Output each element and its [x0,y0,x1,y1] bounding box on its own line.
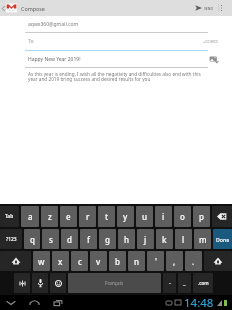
staticText: Happy New Year 2019! [28,56,81,63]
button[interactable]: - [163,273,176,293]
staticText: u [142,211,148,222]
staticText: Français [105,280,124,286]
staticText: .com [198,280,209,286]
button[interactable]: Happy New Year 2019! [0,51,232,67]
button[interactable]: r [79,206,96,227]
staticText: ?123 [6,236,17,243]
button[interactable]: z [41,206,58,227]
staticText: s [49,234,53,245]
button[interactable]: s [42,229,59,249]
button[interactable]: k [156,229,173,249]
button[interactable]: Voice input [32,273,48,293]
button[interactable]: More options [211,0,232,16]
staticText: g [105,234,110,245]
button[interactable]: Done [213,229,232,249]
button[interactable]: ' [147,251,164,271]
button[interactable]: .com [193,273,213,293]
button[interactable]: Recent apps [46,295,70,310]
staticText: k [162,234,167,245]
button[interactable]: h [118,229,135,249]
staticText: p [199,211,204,222]
button[interactable]: a [21,206,39,227]
staticText: a [28,211,33,222]
button[interactable]: x [52,251,69,271]
button[interactable]: f [80,229,97,249]
button[interactable]: j [137,229,154,249]
button[interactable]: SEND [191,0,218,16]
staticText: SEND [204,6,213,11]
button[interactable]: y [117,206,134,227]
button[interactable]: . [185,251,202,271]
button[interactable]: q [24,229,40,249]
staticText: x [58,256,63,267]
staticText: b [115,256,120,267]
button[interactable]: ?123 [0,229,22,249]
staticText: As this year is ending, I wish all the n… [28,71,206,83]
staticText: +CC/BCC [203,39,219,44]
staticText: z [48,211,52,222]
staticText: f [87,234,90,245]
staticText: Tab [5,213,14,220]
staticText: 14:48 [184,295,214,310]
staticText: m [199,234,207,245]
button[interactable]: Backspace [212,206,232,227]
staticText: - [169,279,171,287]
button[interactable]: Navigate up [0,0,21,16]
button[interactable]: o [174,206,191,227]
button[interactable]: c [71,251,88,271]
staticText: r [86,211,90,222]
button[interactable]: Back [0,295,22,310]
staticText: _ [183,279,186,287]
button[interactable]: To [0,33,232,50]
staticText: w [38,256,45,267]
button[interactable]: t [98,206,115,227]
button[interactable]: Français [68,273,161,293]
button[interactable]: v [90,251,107,271]
button[interactable]: u [136,206,153,227]
button[interactable]: Shift [204,251,232,271]
staticText: , [173,256,176,267]
staticText: o [180,211,185,222]
staticText: l [182,234,185,245]
staticText: c [78,256,82,267]
button[interactable]: Home [22,295,46,310]
button[interactable]: p [193,206,210,227]
staticText: ' [155,256,157,267]
button[interactable]: m [194,229,211,249]
button[interactable]: Shift [0,251,31,271]
button[interactable]: Emoji [50,273,66,293]
button[interactable]: , [166,251,183,271]
button[interactable]: Switch keyboard [14,273,30,293]
button[interactable]: w [33,251,50,271]
staticText: Done [216,236,230,243]
button[interactable]: aqwx360@gmail.com [0,17,232,32]
button[interactable]: i [155,206,172,227]
staticText: j [144,234,147,245]
button[interactable]: b [109,251,126,271]
button[interactable]: Attach image [209,54,220,65]
staticText: aqwx360@gmail.com [28,21,79,28]
staticText: v [96,256,101,267]
staticText: t [105,211,109,222]
staticText: y [123,211,128,222]
staticText: To [28,38,34,45]
staticText: Compose [21,5,45,12]
button[interactable]: _ [178,273,191,293]
button[interactable]: l [175,229,192,249]
button[interactable]: e [60,206,77,227]
staticText: n [134,256,140,267]
staticText: e [66,211,71,222]
staticText: i [162,211,165,222]
button[interactable]: n [128,251,145,271]
staticText: . [192,256,195,267]
button[interactable]: g [99,229,116,249]
staticText: d [67,234,72,245]
other: Navigate up [2,6,5,11]
button[interactable]: Tab [0,206,19,227]
staticText: h [124,234,130,245]
button[interactable]: d [61,229,78,249]
staticText: q [30,234,35,245]
